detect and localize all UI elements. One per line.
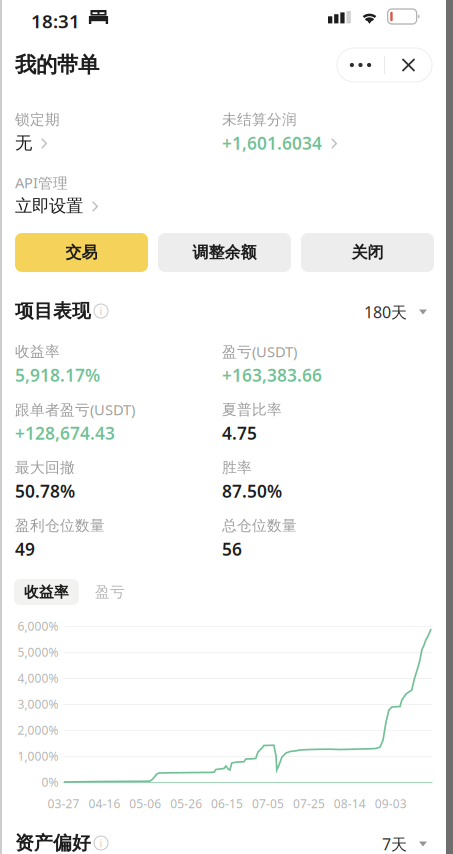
- staticText: 5,918.17%: [15, 363, 100, 386]
- staticText: API管理: [15, 173, 68, 192]
- staticText: 07-05: [252, 795, 284, 811]
- staticText: 收益率: [24, 583, 69, 601]
- staticText: 180天: [364, 301, 407, 323]
- staticText: i: [99, 836, 102, 850]
- staticText: 05-26: [170, 795, 202, 811]
- staticText: 资产偏好: [15, 831, 91, 854]
- staticText: 0%: [41, 774, 58, 790]
- staticText: 无: [15, 132, 32, 154]
- button[interactable]: 180天: [330, 304, 427, 320]
- staticText: 锁定期: [15, 110, 60, 128]
- staticText: 04-16: [88, 795, 120, 811]
- staticText: 05-06: [129, 795, 161, 811]
- staticText: 调整余额: [192, 243, 256, 262]
- staticText: 收益率: [15, 342, 60, 360]
- staticText: 18:31: [31, 9, 80, 33]
- staticText: 最大回撤: [15, 458, 75, 476]
- button[interactable]: 未结算分润: [0, 0, 453, 854]
- staticText: 49: [15, 537, 35, 560]
- staticText: 盈亏: [95, 583, 125, 601]
- staticText: 关闭: [351, 243, 383, 262]
- staticText: 06-15: [211, 795, 243, 811]
- staticText: +128,674.43: [15, 421, 115, 444]
- staticText: 3,000%: [17, 696, 58, 712]
- staticText: 5,000%: [17, 644, 58, 660]
- staticText: 7天: [382, 833, 407, 854]
- button[interactable]: API管理: [0, 0, 453, 854]
- staticText: +163,383.66: [222, 363, 322, 386]
- staticText: 50.78%: [15, 479, 75, 502]
- staticText: 总仓位数量: [222, 516, 297, 534]
- staticText: 87.50%: [222, 479, 282, 502]
- staticText: 07-25: [293, 795, 325, 811]
- button[interactable]: 交易: [15, 233, 148, 272]
- button[interactable]: 收益率: [14, 579, 79, 605]
- staticText: 项目表现: [15, 299, 91, 322]
- staticText: 盈亏(USDT): [222, 342, 297, 361]
- staticText: 跟单者盈亏(USDT): [15, 400, 135, 419]
- staticText: 2,000%: [17, 722, 58, 738]
- staticText: 4,000%: [17, 670, 58, 686]
- staticText: 03-27: [47, 795, 79, 811]
- button[interactable]: 盈亏: [85, 579, 135, 605]
- button[interactable]: 调整余额: [158, 233, 291, 272]
- staticText: 未结算分润: [222, 110, 297, 128]
- staticText: 56: [222, 537, 242, 560]
- staticText: i: [99, 304, 102, 318]
- staticText: 1,000%: [17, 748, 58, 764]
- staticText: 08-14: [334, 795, 366, 811]
- staticText: 09-03: [375, 795, 407, 811]
- staticText: 我的带单: [15, 52, 99, 78]
- button[interactable]: 锁定期: [0, 0, 453, 854]
- button[interactable]: 7天: [330, 836, 427, 852]
- staticText: 立即设置: [15, 195, 83, 217]
- staticText: 胜率: [222, 458, 252, 476]
- button[interactable]: 关闭: [301, 233, 434, 272]
- button[interactable]: Close: [385, 48, 432, 82]
- staticText: 6,000%: [17, 618, 58, 634]
- staticText: 交易: [65, 243, 97, 262]
- staticText: 盈利仓位数量: [15, 516, 105, 534]
- staticText: +1,601.6034: [222, 131, 322, 154]
- staticText: 夏普比率: [222, 400, 282, 418]
- button[interactable]: More options: [337, 48, 384, 82]
- staticText: 4.75: [222, 421, 257, 444]
